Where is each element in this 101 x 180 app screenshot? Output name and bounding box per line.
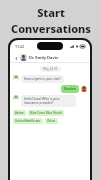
staticText: Dr. Emily Davis bbox=[29, 55, 58, 60]
staticText: Hello Dana! Who is your insurance provid… bbox=[24, 97, 73, 105]
staticText: UnitedHealthcare bbox=[15, 119, 41, 123]
staticText: Start bbox=[37, 5, 65, 20]
button[interactable]: How urgent is your visit? bbox=[13, 75, 76, 83]
staticText: Other bbox=[47, 119, 56, 123]
staticText: Aetna bbox=[15, 111, 24, 115]
button[interactable]: UnitedHealthcare bbox=[13, 118, 43, 124]
staticText: Routine bbox=[64, 87, 76, 91]
button[interactable]: Other bbox=[45, 118, 58, 124]
button[interactable]: Hello Dana! Who is your insurance provid… bbox=[13, 95, 76, 107]
button[interactable]: Aetna bbox=[13, 110, 26, 116]
staticText: Blue Cross Blue Shield bbox=[30, 111, 62, 115]
button[interactable]: Routine bbox=[10, 85, 87, 93]
staticText: May, Jul 03 bbox=[43, 67, 58, 71]
staticText: Conversations bbox=[11, 21, 91, 36]
staticText: 11:22 bbox=[15, 44, 24, 49]
button[interactable]: Blue Cross Blue Shield bbox=[28, 110, 64, 116]
staticText: How urgent is your visit? bbox=[24, 77, 61, 81]
button[interactable]: Back bbox=[13, 55, 19, 61]
